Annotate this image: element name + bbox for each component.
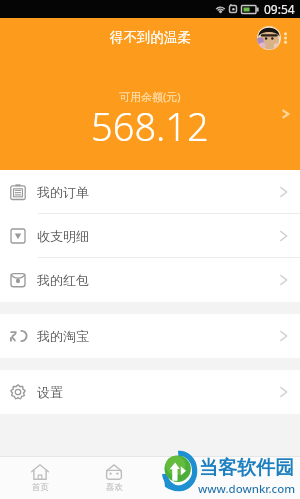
button[interactable]: 喜欢 xyxy=(77,457,151,499)
staticText: 我的红包 xyxy=(37,272,89,288)
button[interactable]: 首页 xyxy=(3,457,77,499)
staticText: 首页 xyxy=(32,482,49,493)
staticText: 喜欢 xyxy=(106,482,123,493)
staticText: 09:54 xyxy=(264,1,295,17)
button[interactable]: Profile avatar xyxy=(257,26,281,50)
staticText: 可用余额(元) xyxy=(119,89,181,104)
button[interactable]: 我的淘宝 xyxy=(0,314,300,358)
staticText: 设置 xyxy=(37,384,63,400)
staticText: 我的订单 xyxy=(37,184,89,200)
button[interactable]: 设置 xyxy=(0,370,300,414)
button[interactable]: 我的订单 xyxy=(0,170,300,214)
staticText: 当客软件园 xyxy=(199,456,294,480)
staticText: 得不到的温柔 xyxy=(110,29,191,46)
staticText: 收支明细 xyxy=(37,228,89,244)
button[interactable]: 收支明细 xyxy=(0,214,300,258)
button[interactable]: More options xyxy=(282,31,289,45)
staticText: 568.12 xyxy=(91,100,209,152)
button[interactable]: 可用余额(元) xyxy=(0,57,300,170)
staticText: 我的淘宝 xyxy=(37,328,89,344)
button[interactable]: 我的红包 xyxy=(0,258,300,302)
staticText: www.downkr.com xyxy=(198,481,296,497)
